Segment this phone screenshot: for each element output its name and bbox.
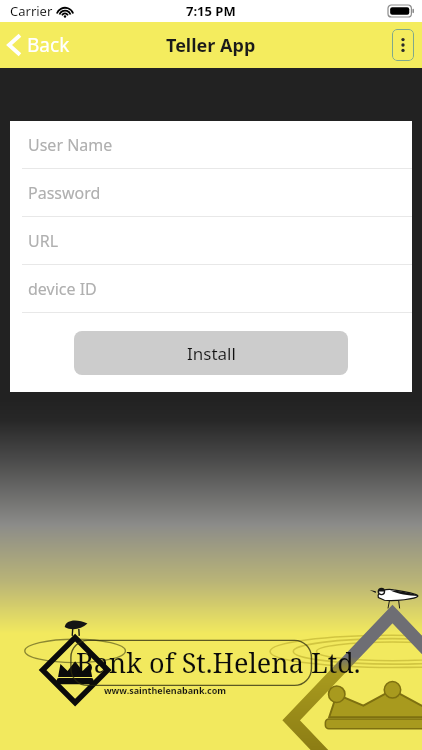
staticText: device ID [28,278,97,300]
button[interactable]: Back [0,22,82,68]
button[interactable]: URL [10,217,412,264]
button[interactable]: Install [74,331,348,375]
staticText: Bank of St.Helena Ltd. [76,644,361,681]
button[interactable]: device ID [10,265,412,312]
button[interactable]: More options [392,29,414,61]
staticText: 7:15 PM [186,2,236,20]
staticText: URL [28,230,59,252]
staticText: User Name [28,134,113,156]
staticText: Password [28,182,101,204]
staticText: Teller App [166,33,256,58]
button[interactable]: Password [10,169,412,216]
staticText: Back [27,32,70,58]
button[interactable]: User Name [10,121,412,168]
staticText: Install [187,342,236,365]
staticText: Carrier [10,2,53,20]
staticText: www.sainthelenabank.com [0,684,330,696]
